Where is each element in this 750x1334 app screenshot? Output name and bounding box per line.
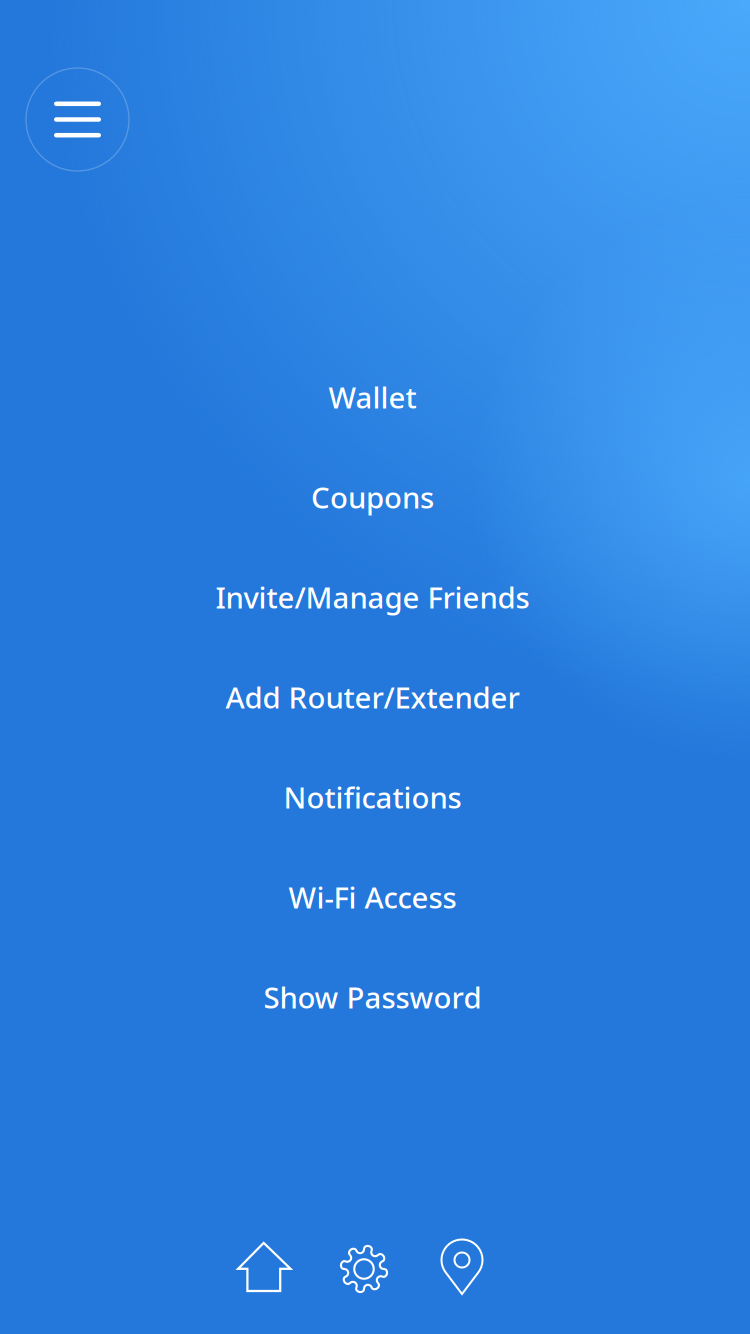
button[interactable]: Show Password (0, 947, 747, 1047)
button[interactable]: Location (412, 1231, 511, 1303)
button[interactable]: Home (214, 1231, 313, 1303)
button[interactable]: Wi-Fi Access (0, 847, 747, 947)
button[interactable]: Notifications (0, 747, 747, 847)
button[interactable]: Menu (26, 68, 129, 171)
staticText: Notifications (283, 777, 461, 816)
button[interactable]: Settings (313, 1231, 412, 1303)
staticText: Wallet (328, 377, 416, 416)
button[interactable]: Wallet (0, 347, 747, 447)
button[interactable]: Coupons (0, 447, 747, 547)
button[interactable]: Invite/Manage Friends (0, 547, 747, 647)
staticText: Invite/Manage Friends (215, 577, 529, 616)
staticText: Coupons (311, 477, 434, 516)
staticText: Show Password (263, 977, 481, 1016)
staticText: Add Router/Extender (225, 677, 519, 716)
button[interactable]: Add Router/Extender (0, 647, 747, 747)
staticText: Wi-Fi Access (288, 877, 456, 916)
